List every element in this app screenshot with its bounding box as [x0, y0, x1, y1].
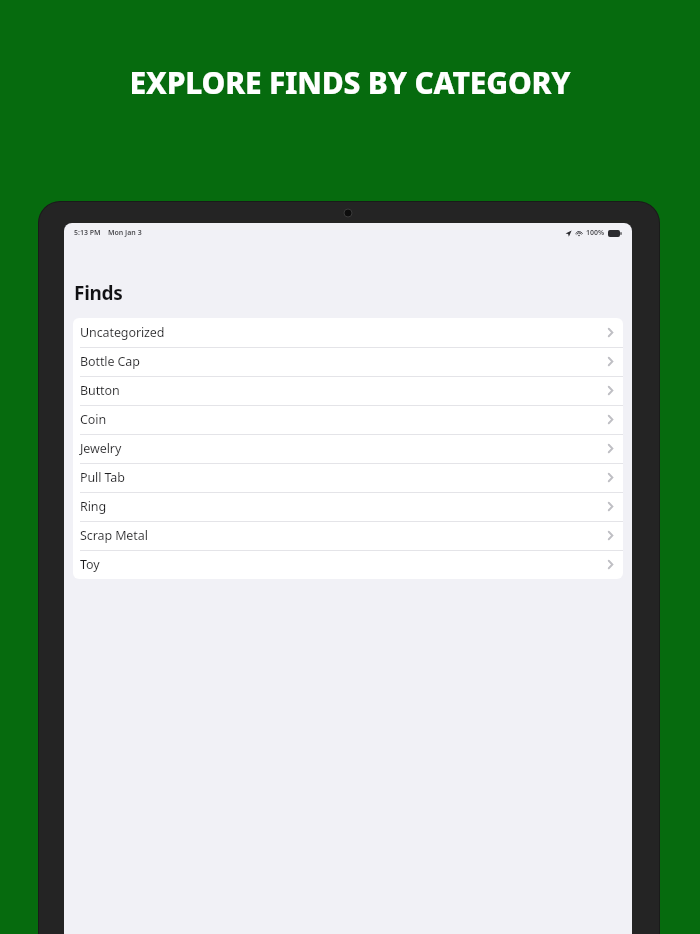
button[interactable]: Jewelry: [73, 434, 623, 463]
button[interactable]: Ring: [73, 492, 623, 521]
staticText: Jewelry: [80, 440, 122, 457]
staticText: Button: [80, 382, 120, 399]
staticText: Bottle Cap: [80, 353, 140, 370]
button[interactable]: Scrap Metal: [73, 521, 623, 550]
button[interactable]: Bottle Cap: [73, 347, 623, 376]
button[interactable]: Toy: [73, 550, 623, 579]
staticText: Scrap Metal: [80, 527, 148, 544]
button[interactable]: Coin: [73, 405, 623, 434]
staticText: Toy: [80, 556, 100, 573]
staticText: Ring: [80, 498, 107, 515]
staticText: Uncategorized: [80, 324, 165, 341]
staticText: 5:13 PM: [74, 228, 101, 238]
button[interactable]: Pull Tab: [73, 463, 623, 492]
staticText: EXPLORE FINDS BY CATEGORY: [0, 62, 700, 103]
staticText: 100%: [586, 228, 605, 238]
staticText: Finds: [74, 280, 123, 306]
button[interactable]: Uncategorized: [73, 318, 623, 347]
staticText: Pull Tab: [80, 469, 125, 486]
staticText: Coin: [80, 411, 107, 428]
button[interactable]: Button: [73, 376, 623, 405]
staticText: Mon Jan 3: [108, 228, 142, 238]
